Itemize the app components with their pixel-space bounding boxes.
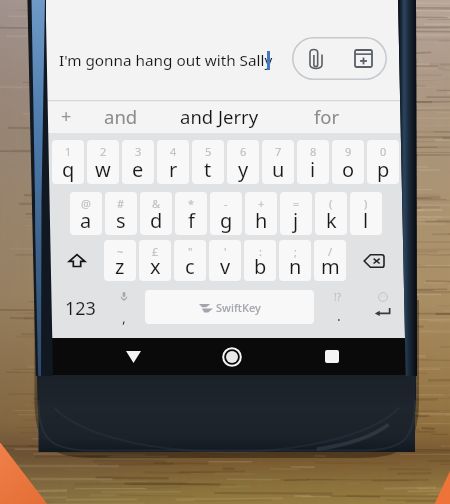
staticText: + — [61, 104, 72, 129]
button[interactable]: Enter — [363, 289, 403, 327]
staticText: - — [224, 196, 228, 211]
staticText: 4 — [170, 144, 177, 159]
button[interactable]: for — [284, 100, 370, 133]
staticText: 2 — [100, 144, 107, 159]
staticText: v — [220, 253, 231, 280]
staticText: 8 — [310, 144, 317, 159]
button[interactable]: 8 — [297, 140, 329, 184]
staticText: 9 — [345, 144, 352, 159]
button[interactable]: £ — [139, 240, 171, 281]
button[interactable]: + — [245, 192, 277, 235]
staticText: l — [363, 207, 369, 234]
staticText: n — [289, 253, 302, 280]
button[interactable]: - — [210, 192, 242, 235]
staticText: " — [188, 244, 193, 259]
button[interactable]: 0 — [367, 140, 399, 184]
button[interactable]: 1 — [52, 140, 84, 184]
staticText: k — [326, 207, 337, 234]
staticText: o — [342, 156, 355, 183]
button[interactable]: 9 — [332, 140, 364, 184]
button[interactable]: Insert image — [340, 37, 387, 80]
staticText: w — [95, 156, 111, 183]
button[interactable]: @ — [70, 192, 102, 235]
button[interactable]: and — [82, 100, 160, 133]
button[interactable]: = — [280, 192, 312, 235]
staticText: @ — [81, 196, 91, 211]
staticText: j — [293, 207, 299, 234]
staticText: £ — [152, 244, 159, 259]
staticText: c — [185, 253, 195, 280]
staticText: u — [272, 156, 285, 183]
button[interactable]: Space — [145, 290, 314, 324]
staticText: & — [152, 196, 161, 211]
staticText: ; — [294, 244, 297, 259]
button[interactable]: 5 — [192, 140, 224, 184]
button[interactable]: / — [314, 240, 346, 281]
button[interactable]: ( — [315, 192, 347, 235]
staticText: r — [169, 156, 178, 183]
staticText: 7 — [275, 144, 282, 159]
button[interactable]: ) — [350, 192, 382, 235]
staticText: m — [321, 253, 340, 280]
button[interactable]: : — [244, 240, 276, 281]
staticText: y — [238, 156, 249, 183]
button[interactable]: ~ — [104, 240, 136, 281]
staticText: b — [254, 253, 267, 280]
staticText: z — [115, 253, 125, 280]
staticText: ~ — [117, 244, 124, 259]
staticText: g — [220, 207, 233, 234]
staticText: !? — [334, 290, 342, 304]
staticText: q — [62, 156, 75, 183]
staticText: and — [104, 104, 138, 129]
button[interactable]: ; — [279, 240, 311, 281]
staticText: + — [258, 196, 265, 211]
button[interactable]: More suggestions — [50, 100, 82, 133]
staticText: = — [293, 196, 300, 211]
staticText: 0 — [380, 144, 387, 159]
staticText: I'm gonna hang out with Sally — [59, 50, 273, 71]
button[interactable]: " — [174, 240, 206, 281]
staticText: , — [122, 308, 126, 327]
staticText: e — [132, 156, 144, 183]
button[interactable]: 3 — [122, 140, 154, 184]
staticText: 5 — [205, 144, 212, 159]
staticText: p — [377, 156, 390, 183]
button[interactable]: # — [105, 192, 137, 235]
button[interactable]: and Jerry — [166, 100, 272, 133]
staticText: 1 — [65, 144, 72, 159]
button[interactable]: 7 — [262, 140, 294, 184]
button[interactable]: !? — [321, 289, 359, 327]
staticText: : — [259, 244, 262, 259]
staticText: and Jerry — [180, 104, 259, 129]
button[interactable]: Attach file — [292, 37, 340, 80]
staticText: # — [117, 196, 125, 211]
button[interactable]: 123 — [56, 289, 104, 327]
staticText: s — [116, 207, 126, 234]
staticText: / — [328, 244, 333, 259]
button[interactable]: 2 — [87, 140, 119, 184]
button[interactable]: 4 — [157, 140, 189, 184]
button[interactable]: & — [140, 192, 172, 235]
button[interactable]: Back — [106, 338, 160, 375]
staticText: t — [204, 156, 212, 183]
staticText: * — [188, 196, 195, 211]
staticText: d — [150, 207, 163, 234]
button[interactable]: Delete — [346, 240, 401, 281]
staticText: SwiftKey — [216, 300, 261, 315]
staticText: . — [337, 306, 341, 325]
button[interactable]: Voice input — [106, 289, 144, 327]
staticText: for — [314, 104, 340, 129]
button[interactable]: 6 — [227, 140, 259, 184]
button[interactable]: * — [175, 192, 207, 235]
button[interactable]: Recent apps — [305, 338, 359, 375]
staticText: 3 — [135, 144, 142, 159]
staticText: ) — [364, 196, 368, 211]
button[interactable]: ' — [209, 240, 241, 281]
staticText: ( — [329, 196, 333, 211]
staticText: 123 — [65, 296, 96, 321]
button[interactable]: Shift — [50, 240, 104, 281]
staticText: h — [255, 207, 268, 234]
button[interactable]: Home — [205, 338, 259, 375]
staticText: a — [80, 207, 92, 234]
staticText: i — [310, 156, 316, 183]
